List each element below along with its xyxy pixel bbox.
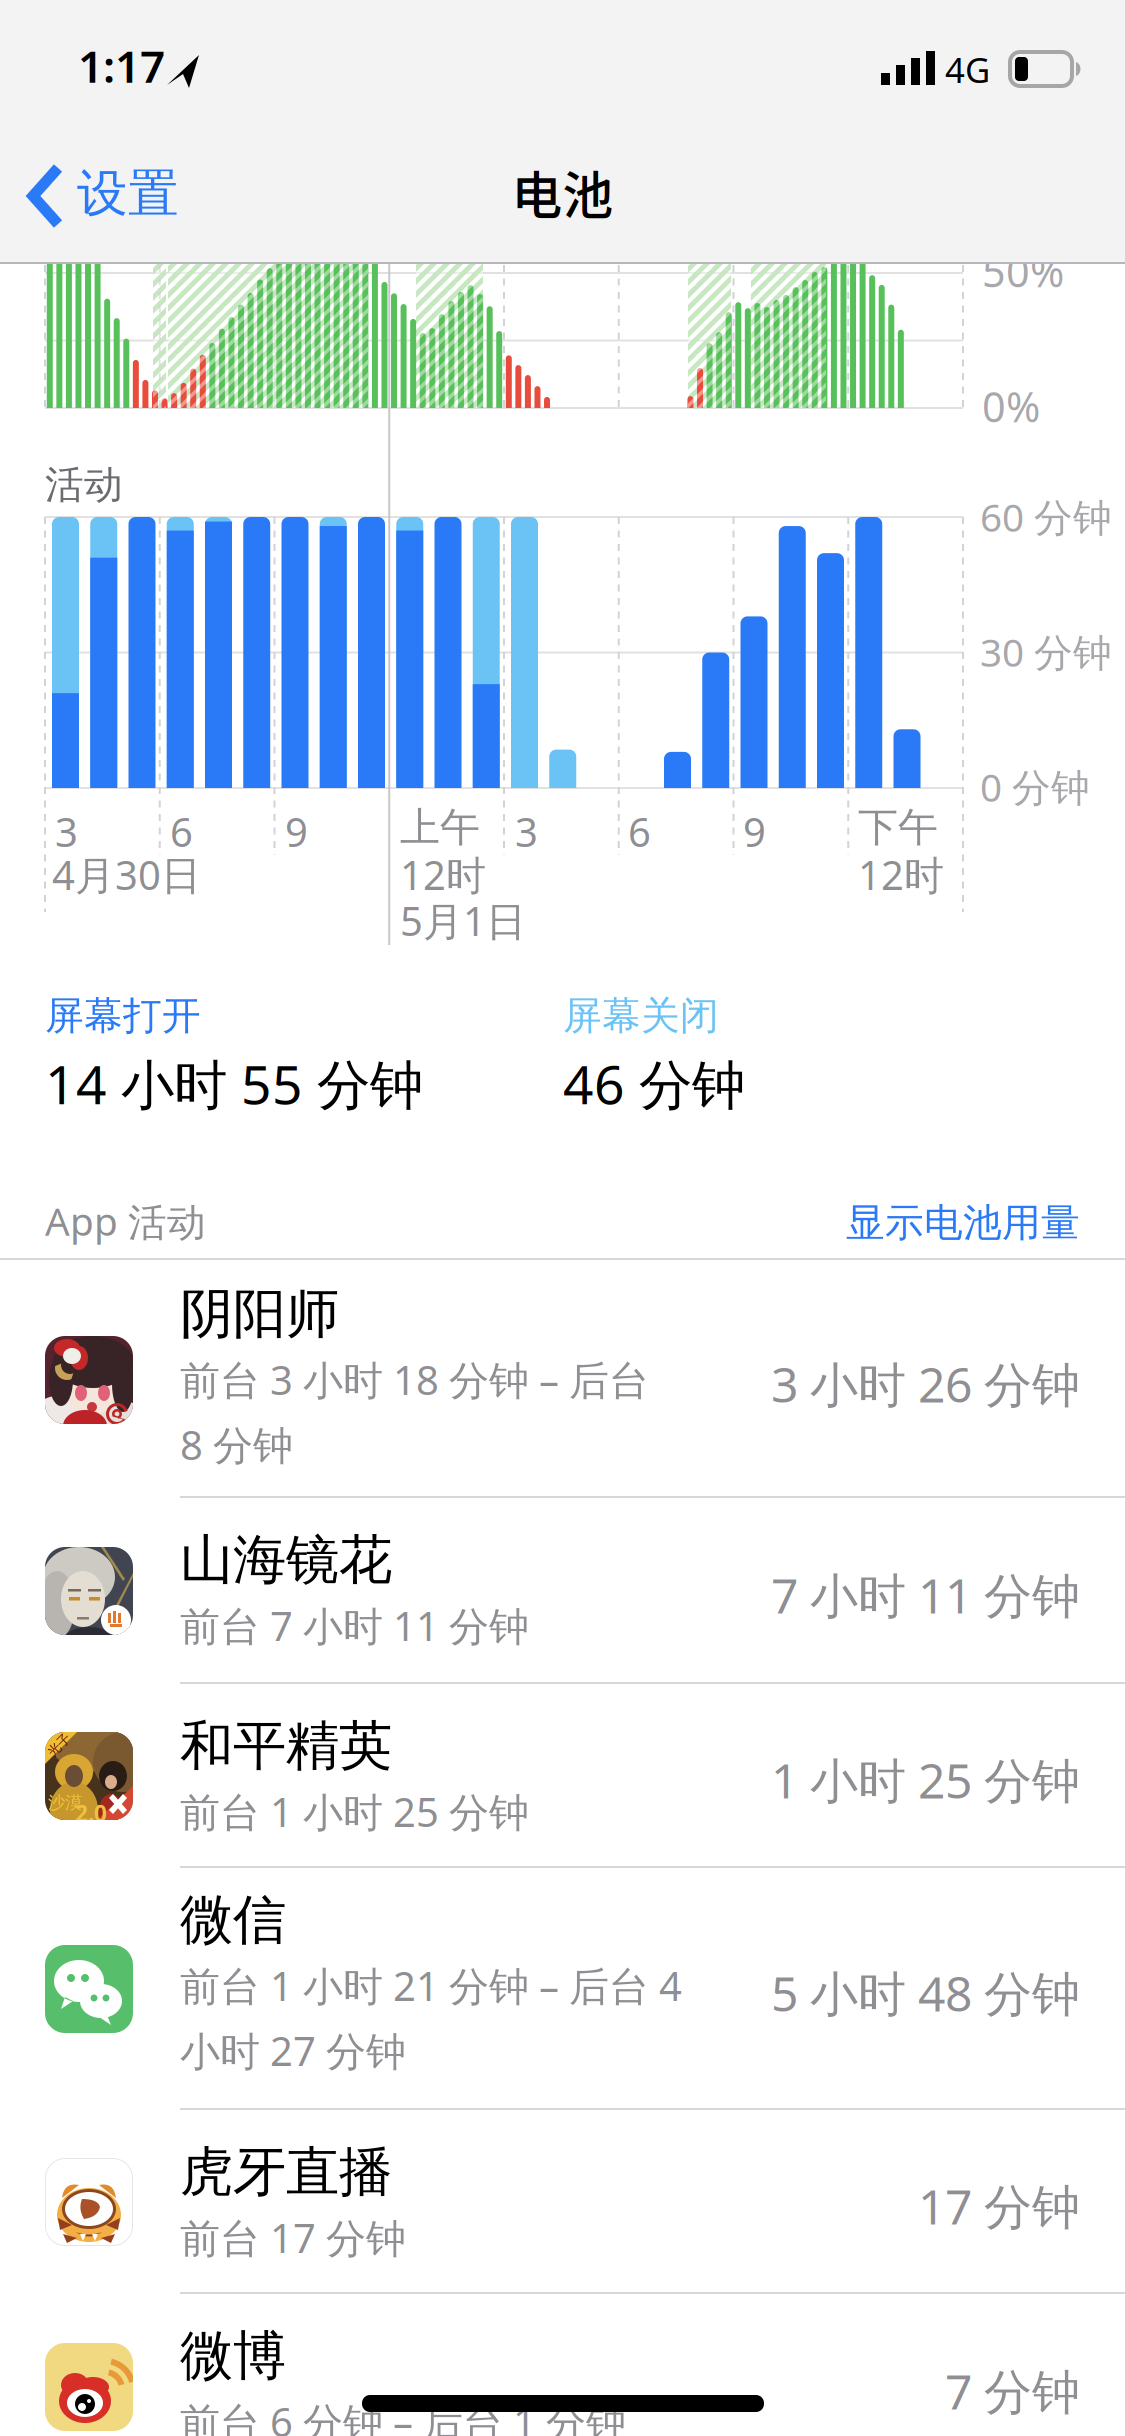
button[interactable]: 返回设置 [25,161,185,231]
staticText: 60 分钟 [980,491,1112,542]
staticText: 30 分钟 [980,626,1112,677]
staticText: 0 分钟 [980,761,1090,812]
staticText: 12时 [858,848,944,901]
staticText: 电池 [511,155,613,229]
staticText: 山海镜花 [180,1527,392,1593]
staticText: 1:17 [78,36,165,95]
button[interactable]: 阴阳师 [0,1262,1125,1498]
button[interactable]: 山海镜花 [0,1498,1125,1684]
staticText: 显示电池用量 [846,1199,1080,1247]
staticText: 前台 7 小时 11 分钟 [180,1599,529,1652]
staticText: 前台 6 分钟 – 后台 1 分钟 [180,2395,626,2436]
staticText: 4月30日 [52,848,201,901]
staticText: 3 [55,805,78,858]
staticText: 12时 [400,848,486,901]
staticText: 50% [982,244,1064,299]
staticText: 5月1日 [400,894,526,947]
staticText: 活动 [45,461,123,509]
staticText: 设置 [77,162,179,225]
staticText: 46 分钟 [563,1048,745,1119]
staticText: 屏幕打开 [45,992,201,1040]
staticText: 6 [628,805,651,858]
staticText: 3 小时 26 分钟 [771,1352,1080,1416]
staticText: 前台 1 小时 21 分钟 – 后台 4 [180,1959,682,2012]
staticText: 9 [743,805,766,858]
staticText: 9 [285,805,308,858]
staticText: 前台 3 小时 18 分钟 – 后台 [180,1353,649,1406]
button[interactable]: 微信 [0,1868,1125,2110]
staticText: 前台 1 小时 25 分钟 [180,1785,529,1838]
staticText: 微信 [180,1887,286,1953]
staticText: 8 分钟 [180,1418,293,1471]
staticText: 小时 27 分钟 [180,2024,406,2077]
staticText: 7 分钟 [945,2359,1080,2423]
staticText: 3 [515,805,538,858]
staticText: 4G [945,47,990,93]
button[interactable]: 虎牙直播 [0,2110,1125,2294]
button[interactable]: 显示电池用量 [846,1199,1080,1247]
button[interactable]: 光子 [0,1684,1125,1868]
staticText: 和平精英 [180,1713,392,1779]
staticText: 17 分钟 [918,2174,1080,2238]
staticText: 2.0 [75,1798,107,1828]
staticText: 7 小时 11 分钟 [771,1563,1080,1627]
staticText: 前台 17 分钟 [180,2211,406,2264]
staticText: 屏幕关闭 [563,992,719,1040]
staticText: 上午 [400,803,480,852]
staticText: 阴阳师 [180,1281,339,1347]
staticText: 5 小时 48 分钟 [771,1961,1080,2025]
staticText: 光子 [46,1737,72,1753]
staticText: 0% [982,379,1040,434]
staticText: 下午 [858,803,938,852]
staticText: 14 小时 55 分钟 [45,1048,423,1119]
staticText: 6 [170,805,193,858]
button[interactable]: 微博 [0,2294,1125,2436]
staticText: 微博 [180,2323,286,2389]
staticText: App 活动 [45,1195,206,1247]
staticText: 1 小时 25 分钟 [771,1748,1080,1812]
staticText: 沙漠 [48,1792,82,1813]
staticText: 虎牙直播 [180,2139,392,2205]
